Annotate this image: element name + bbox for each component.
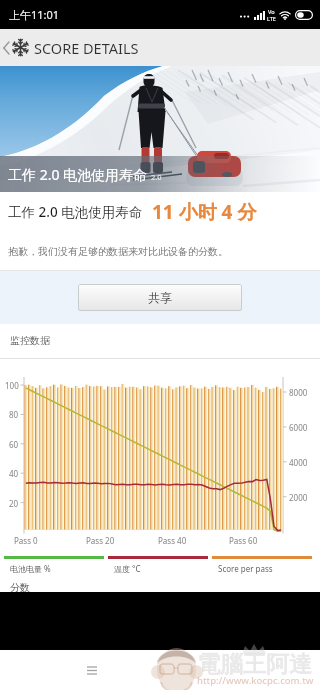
staticText: 20: [9, 498, 19, 509]
button[interactable]: 共享: [78, 284, 242, 311]
staticText: Vo: [268, 8, 275, 15]
staticText: 共享: [148, 290, 172, 305]
staticText: 分数: [10, 581, 30, 592]
staticText: 工作 2.0 电池使用寿命: [8, 203, 143, 221]
staticText: 工作 2.0 电池使用寿命: [8, 165, 148, 184]
staticText: 电池电量 %: [10, 563, 51, 574]
staticText: Pass 20: [86, 535, 115, 546]
button[interactable]: Back: [0, 29, 12, 66]
staticText: 60: [9, 439, 19, 450]
staticText: http://www.kocpc.com.tw: [197, 674, 314, 687]
staticText: 4000: [289, 457, 308, 468]
button[interactable]: Recent apps: [78, 656, 106, 684]
staticText: 2000: [289, 492, 308, 503]
staticText: 8000: [289, 387, 308, 398]
staticText: 40: [9, 468, 19, 479]
staticText: 6000: [289, 422, 308, 433]
staticText: 11 小时 4 分: [152, 199, 257, 225]
staticText: SCORE DETAILS: [34, 38, 139, 58]
staticText: Pass 40: [158, 535, 187, 546]
staticText: Score per pass: [218, 563, 273, 574]
staticText: LTE: [267, 15, 276, 22]
staticText: 電腦王阿達: [197, 650, 312, 679]
staticText: 温度 °C: [114, 563, 141, 574]
staticText: 100: [5, 380, 19, 391]
staticText: 80: [9, 409, 19, 420]
staticText: 2.0: [151, 172, 162, 182]
staticText: 上午11:01: [9, 7, 60, 22]
staticText: Pass 60: [229, 535, 258, 546]
staticText: 监控数据: [10, 334, 50, 347]
staticText: Pass 0: [14, 535, 38, 546]
staticText: 抱歉，我们没有足够的数据来对比此设备的分数。: [8, 245, 228, 258]
